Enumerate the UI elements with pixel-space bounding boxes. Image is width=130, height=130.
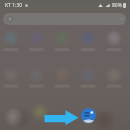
button[interactable]: Search bbox=[3, 13, 126, 25]
staticText: 80% bbox=[112, 2, 122, 9]
staticText: KT 1:30 bbox=[5, 2, 23, 9]
button[interactable]: Open app bbox=[81, 108, 96, 123]
